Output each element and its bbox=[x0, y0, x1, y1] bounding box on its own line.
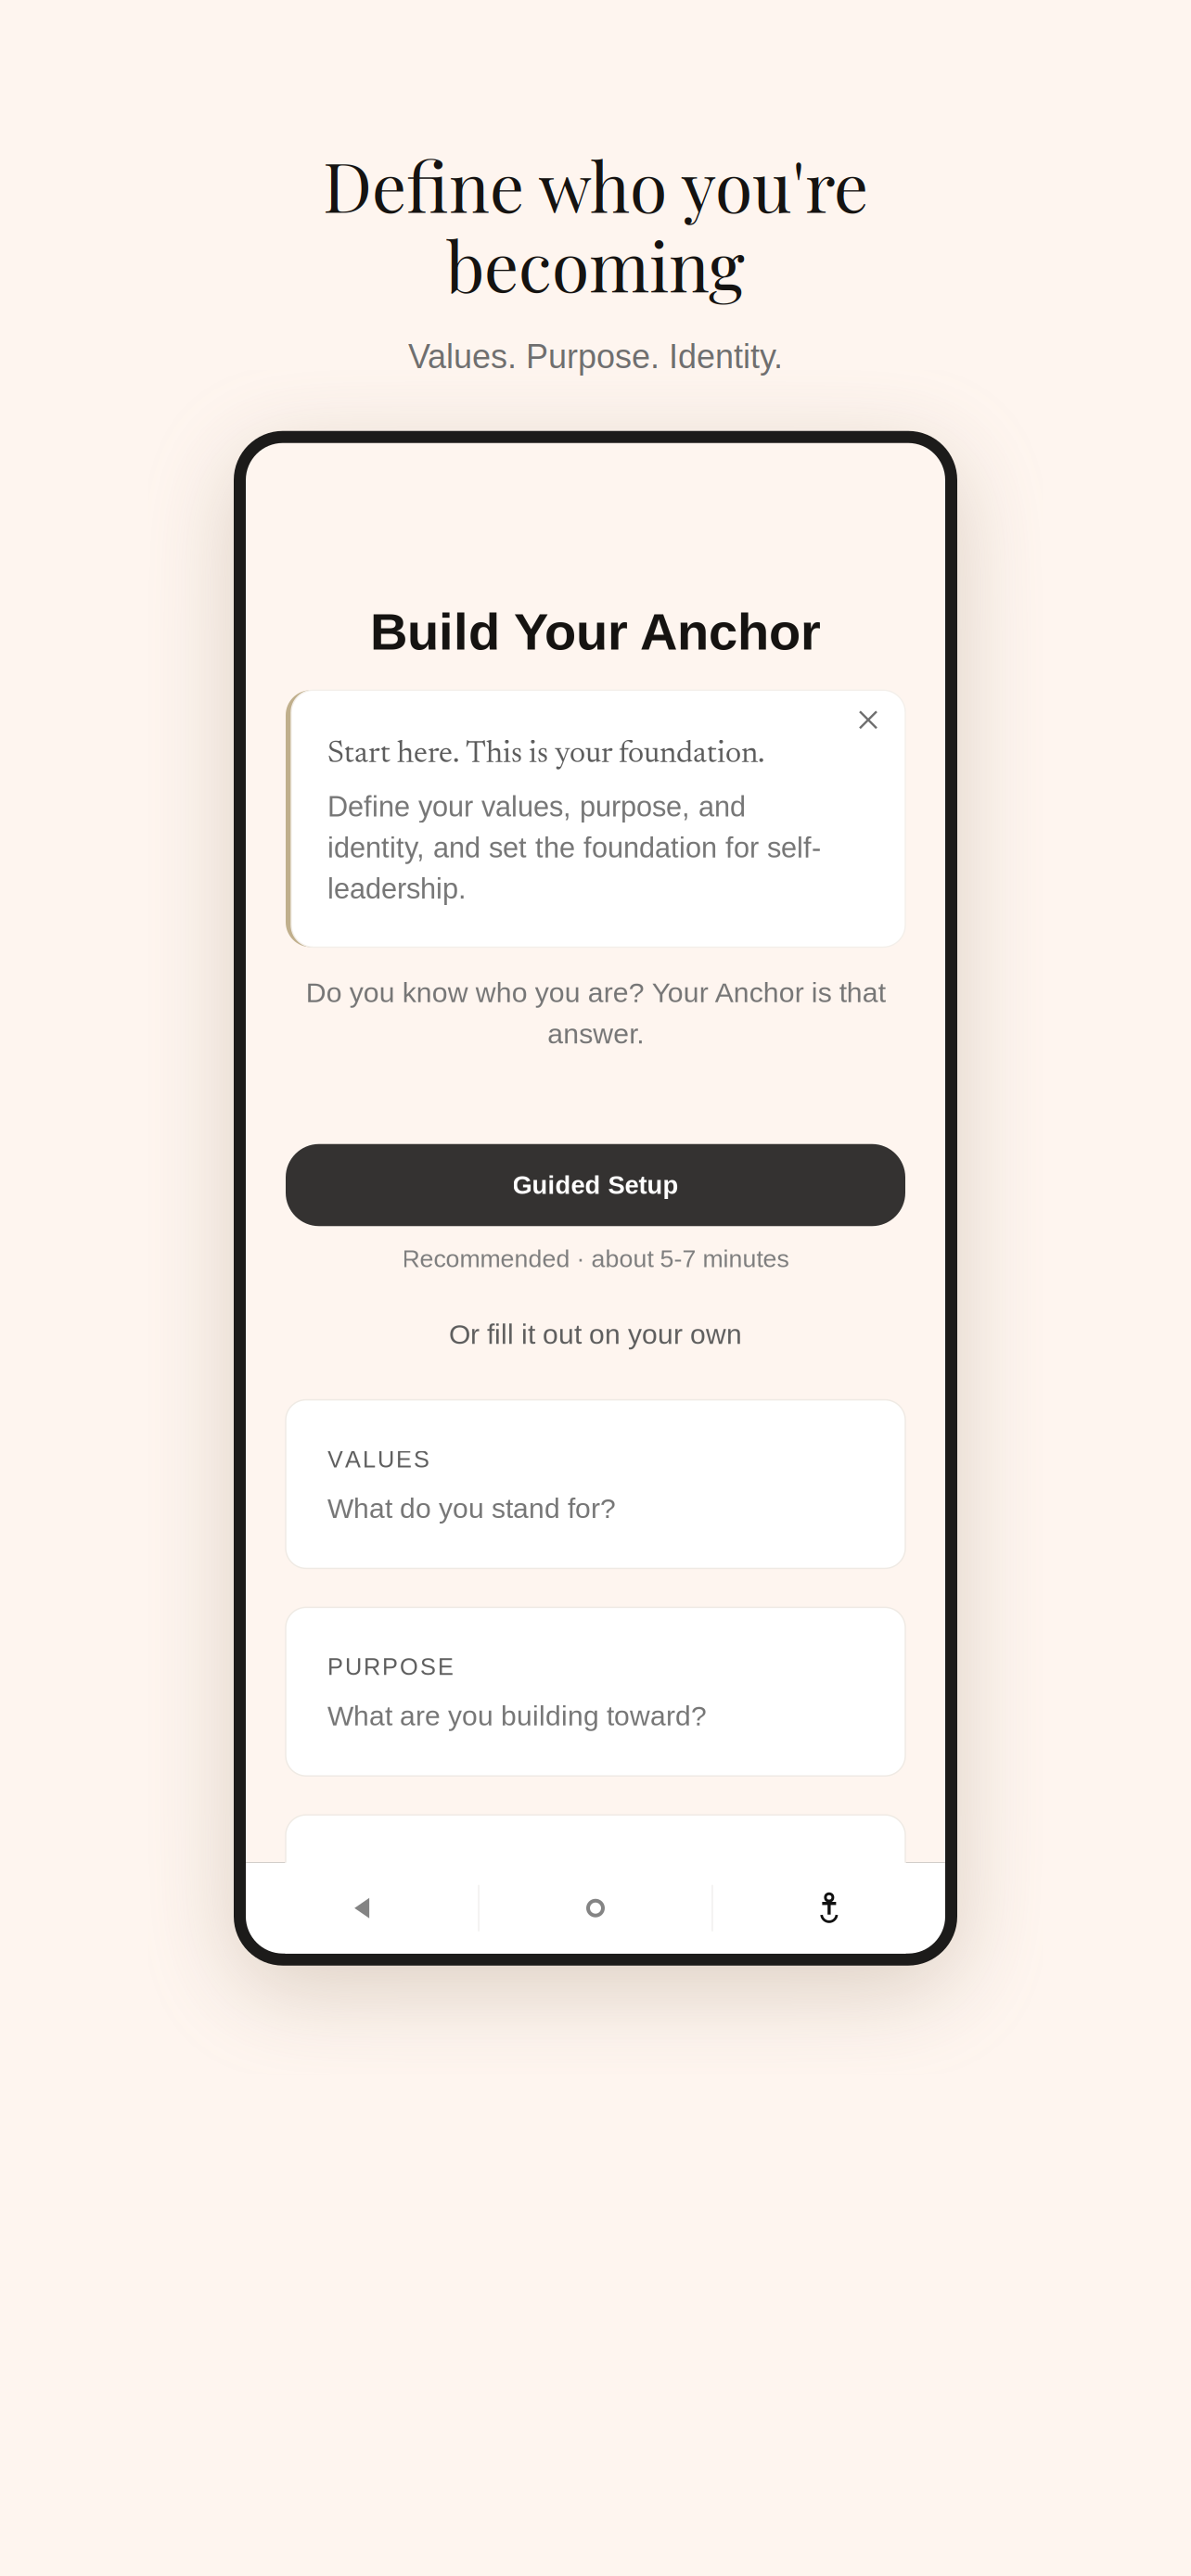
button[interactable]: Back bbox=[246, 1898, 478, 1918]
button[interactable]: V A L U E S bbox=[286, 1400, 905, 1568]
staticText: Who are you becoming? bbox=[327, 1908, 632, 1939]
staticText: Guided Setup bbox=[512, 1171, 679, 1199]
button[interactable]: P U R P O S E bbox=[286, 1607, 905, 1776]
staticText: Build Your Anchor bbox=[370, 602, 821, 661]
staticText: Or fill it out on your own bbox=[449, 1319, 742, 1350]
button[interactable]: Home bbox=[479, 1899, 712, 1917]
staticText: Define your values, purpose, and identit… bbox=[327, 791, 821, 904]
staticText: Do you know who you are? Your Anchor is … bbox=[306, 977, 885, 1049]
staticText: What are you building toward? bbox=[327, 1700, 707, 1731]
staticText: What do you stand for? bbox=[327, 1493, 616, 1524]
staticText: P U R P O S E bbox=[327, 1654, 454, 1680]
button[interactable]: Anchor bbox=[713, 1892, 945, 1924]
staticText: Start here. This is your foundation. bbox=[327, 739, 764, 770]
button[interactable]: I D E N T I T Y bbox=[286, 1815, 905, 1983]
button[interactable]: Dismiss bbox=[859, 690, 905, 729]
staticText: Recommended · about 5-7 minutes bbox=[402, 1245, 789, 1272]
button[interactable]: Guided Setup bbox=[246, 1144, 945, 1226]
staticText: becoming bbox=[446, 219, 745, 309]
staticText: Define who you're bbox=[323, 139, 868, 230]
staticText: Values. Purpose. Identity. bbox=[408, 338, 783, 375]
staticText: V A L U E S bbox=[327, 1446, 429, 1472]
